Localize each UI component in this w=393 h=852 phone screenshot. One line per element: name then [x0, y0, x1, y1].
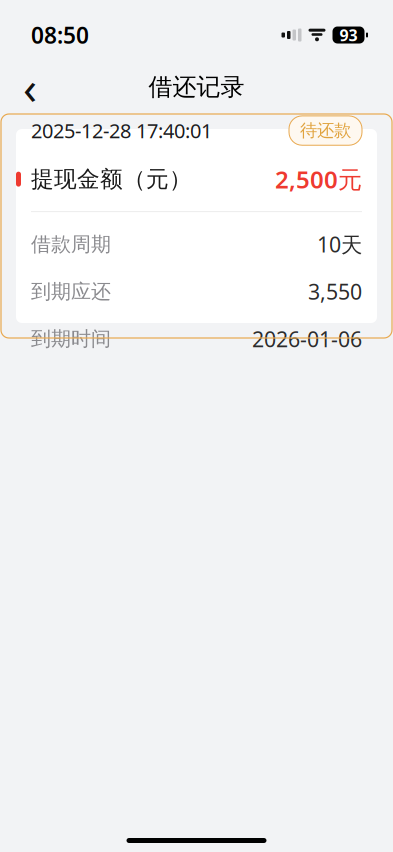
staticText: 3,550: [308, 277, 362, 306]
staticText: 到期时间: [31, 327, 111, 351]
staticText: 10天: [317, 230, 362, 258]
staticText: 93: [339, 24, 357, 46]
staticText: 待还款: [300, 120, 351, 141]
staticText: 2026-01-06: [252, 325, 362, 353]
staticText: 到期应还: [31, 279, 111, 304]
staticText: ‹: [23, 57, 37, 117]
staticText: 2025-12-28 17:40:01: [31, 117, 212, 144]
staticText: 借还记录: [148, 72, 244, 102]
staticText: 08:50: [31, 20, 89, 50]
staticText: 提现金额（元）: [31, 165, 192, 193]
staticText: 借款周期: [31, 232, 111, 257]
button[interactable]: 返回: [8, 65, 52, 109]
staticText: 2,500元: [275, 163, 362, 195]
